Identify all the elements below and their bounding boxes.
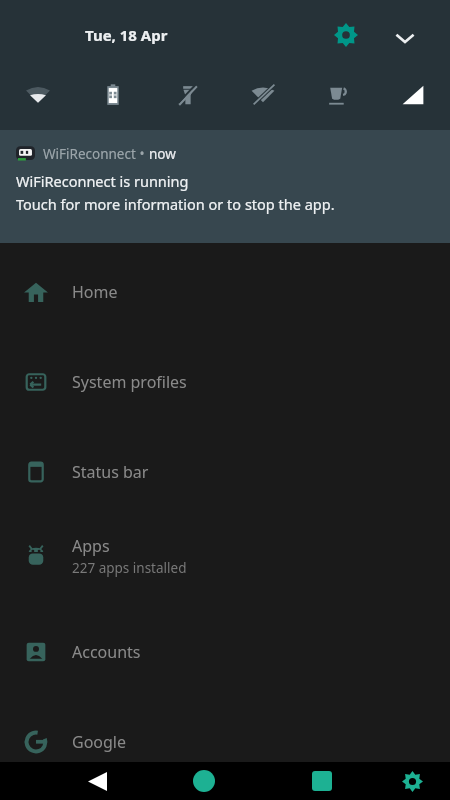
button[interactable]: Hotspot off	[225, 72, 300, 118]
staticText: Status bar	[72, 461, 149, 483]
button[interactable]: Expand	[387, 20, 423, 56]
button[interactable]: Back	[78, 762, 116, 800]
button[interactable]: Quick settings	[393, 762, 431, 800]
button[interactable]: Home	[185, 762, 223, 800]
button[interactable]: Google	[0, 719, 450, 765]
staticText: Tue, 18 Apr	[85, 25, 168, 45]
staticText: now	[149, 145, 176, 163]
staticText: Google	[72, 731, 127, 753]
staticText: System profiles	[72, 371, 187, 393]
button[interactable]: Accounts	[0, 629, 450, 675]
button[interactable]: Flashlight off	[150, 72, 225, 118]
staticText: •	[136, 145, 149, 163]
button[interactable]: Home	[0, 269, 450, 315]
staticText: WiFiReconnect is running	[16, 171, 189, 191]
staticText: WiFiReconnect	[43, 145, 136, 163]
button[interactable]: Battery	[75, 72, 150, 118]
button[interactable]: Recents	[303, 762, 341, 800]
button[interactable]: System profiles	[0, 359, 450, 405]
button[interactable]: Status bar	[0, 449, 450, 495]
button[interactable]: Caffeine	[300, 72, 375, 118]
button[interactable]: Apps	[0, 525, 450, 587]
button[interactable]: WiFiReconnect	[0, 130, 450, 243]
staticText: Home	[72, 281, 118, 303]
button[interactable]: Wi-Fi	[0, 72, 75, 118]
staticText: Apps	[72, 535, 110, 557]
staticText: Accounts	[72, 641, 141, 663]
button[interactable]: Settings	[328, 17, 364, 53]
button[interactable]: Signal	[375, 72, 450, 118]
staticText: Touch for more information or to stop th…	[16, 194, 335, 214]
staticText: 227 apps installed	[72, 559, 187, 577]
